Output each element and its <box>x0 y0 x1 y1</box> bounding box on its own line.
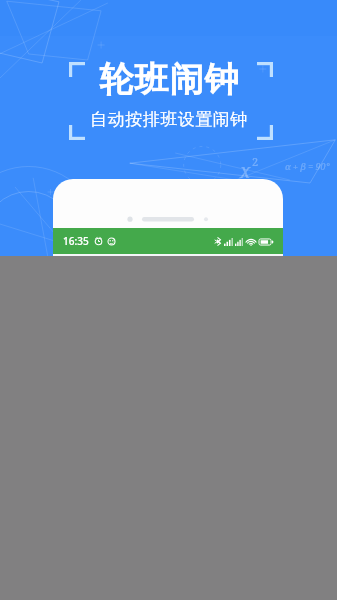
button[interactable]: 16:35 <box>53 179 283 299</box>
staticText: α + β = 90° <box>285 160 330 172</box>
staticText: 轮班闹钟 <box>99 58 239 101</box>
staticText: x <box>240 158 251 184</box>
staticText: 16:35 <box>63 234 89 248</box>
staticText: 自动按排班设置闹钟 <box>90 109 248 130</box>
staticText: 2 <box>252 154 259 169</box>
